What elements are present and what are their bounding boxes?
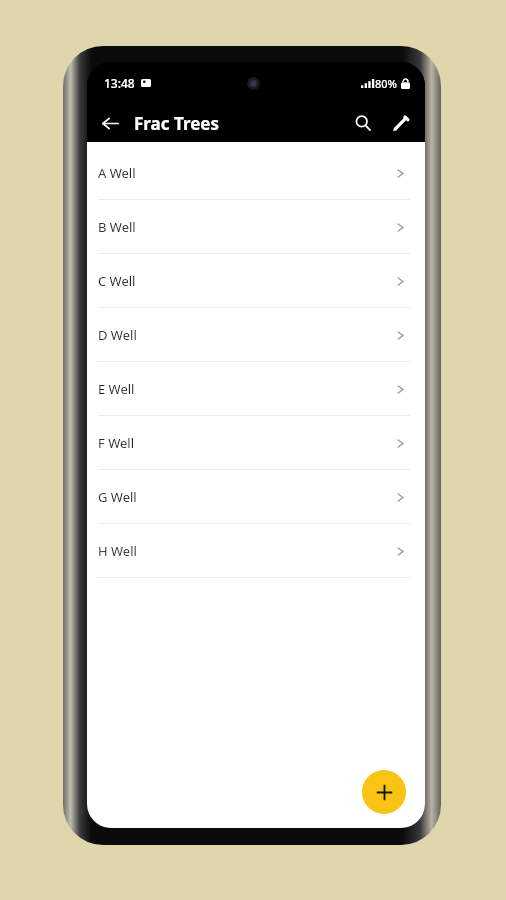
button[interactable]: D Well [87, 308, 425, 362]
button[interactable]: G Well [87, 470, 425, 524]
button[interactable]: F Well [87, 416, 425, 470]
staticText: B Well [98, 218, 136, 236]
staticText: 80% [375, 76, 397, 91]
staticText: H Well [98, 542, 137, 560]
staticText: F Well [98, 434, 134, 452]
button[interactable]: Add [362, 770, 406, 814]
staticText: Frac Trees [134, 112, 220, 135]
staticText: A Well [98, 164, 136, 182]
button[interactable]: H Well [87, 524, 425, 578]
button[interactable]: E Well [87, 362, 425, 416]
staticText: E Well [98, 380, 135, 398]
button[interactable]: C Well [87, 254, 425, 308]
staticText: D Well [98, 326, 137, 344]
staticText: 13:48 [104, 75, 135, 91]
button[interactable]: B Well [87, 200, 425, 254]
staticText: G Well [98, 488, 137, 506]
button[interactable]: Edit [383, 106, 417, 140]
button[interactable]: Back [94, 107, 126, 139]
button[interactable]: Search [346, 106, 380, 140]
button[interactable]: A Well [87, 146, 425, 200]
staticText: C Well [98, 272, 136, 290]
